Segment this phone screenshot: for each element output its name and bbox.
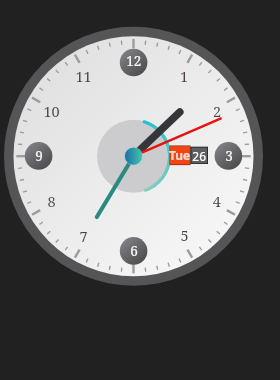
button[interactable]: Analog watch face (0, 0, 280, 380)
